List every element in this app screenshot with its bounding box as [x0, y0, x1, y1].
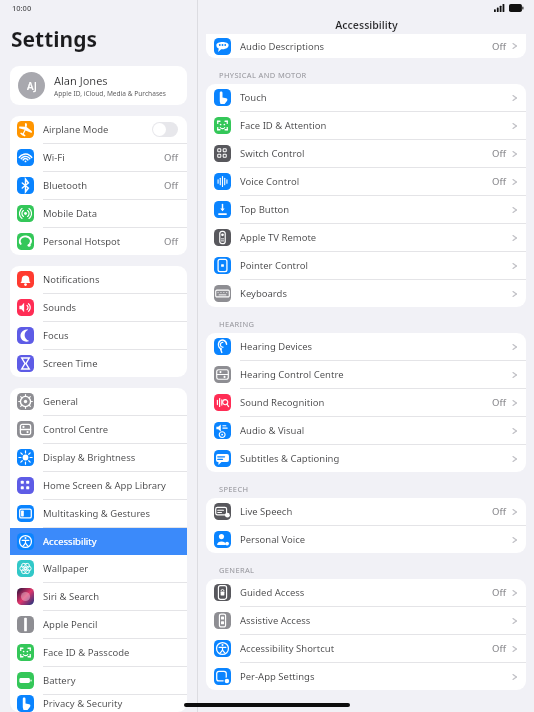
staticText: Bluetooth — [43, 179, 88, 192]
staticText: Live Speech — [240, 505, 293, 518]
staticText: Off — [492, 40, 506, 53]
staticText: Off — [492, 505, 506, 518]
staticText: Accessibility Shortcut — [240, 642, 335, 655]
staticText: Off — [492, 147, 506, 160]
staticText: Guided Access — [240, 586, 305, 599]
staticText: Audio & Visual — [240, 424, 305, 437]
staticText: Hearing Control Centre — [240, 368, 344, 381]
button[interactable]: Assistive Access — [206, 607, 526, 635]
staticText: Accessibility — [335, 18, 398, 32]
staticText: Off — [164, 235, 178, 248]
staticText: Battery — [43, 674, 76, 687]
button[interactable]: Display & Brightness — [10, 444, 187, 472]
button[interactable]: Pointer Control — [206, 252, 526, 280]
button[interactable]: Apple TV Remote — [206, 224, 526, 252]
staticText: Wi-Fi — [43, 151, 65, 164]
button[interactable]: Screen Time — [10, 350, 187, 377]
staticText: Apple Pencil — [43, 618, 98, 631]
button[interactable]: Mobile Data — [10, 200, 187, 228]
button[interactable]: Airplane Mode toggle — [152, 122, 178, 137]
staticText: Audio Descriptions — [240, 40, 325, 53]
staticText: Mobile Data — [43, 207, 97, 220]
staticText: Display & Brightness — [43, 451, 136, 464]
staticText: Airplane Mode — [43, 123, 109, 136]
staticText: Screen Time — [43, 357, 98, 370]
staticText: Siri & Search — [43, 590, 100, 603]
staticText: Notifications — [43, 273, 100, 286]
button[interactable]: Battery — [10, 667, 187, 695]
button[interactable]: Home Screen & App Library — [10, 472, 187, 500]
button[interactable]: Notifications — [10, 266, 187, 294]
button[interactable]: Voice Control — [206, 168, 526, 196]
staticText: Touch — [240, 91, 267, 104]
staticText: Off — [492, 586, 506, 599]
staticText: 10:00 — [12, 3, 32, 13]
button[interactable]: Siri & Search — [10, 583, 187, 611]
button[interactable]: Face ID & Passcode — [10, 639, 187, 667]
button[interactable]: Subtitles & Captioning — [206, 445, 526, 472]
staticText: Apple ID, iCloud, Media & Purchases — [54, 89, 166, 98]
staticText: Off — [164, 151, 178, 164]
button[interactable]: Personal Hotspot — [10, 228, 187, 255]
staticText: General — [43, 395, 79, 408]
button[interactable]: Focus — [10, 322, 187, 350]
staticText: PHYSICAL AND MOTOR — [219, 70, 307, 80]
button[interactable]: Audio & Visual — [206, 417, 526, 445]
button[interactable]: AJ — [10, 66, 187, 105]
button[interactable]: Multitasking & Gestures — [10, 500, 187, 528]
staticText: Control Centre — [43, 423, 109, 436]
staticText: Keyboards — [240, 287, 287, 300]
button[interactable]: Live Speech — [206, 498, 526, 526]
staticText: Sounds — [43, 301, 77, 314]
button[interactable]: Touch — [206, 84, 526, 112]
staticText: Accessibility — [43, 535, 97, 548]
staticText: Pointer Control — [240, 259, 308, 272]
staticText: Hearing Devices — [240, 340, 313, 353]
staticText: Off — [492, 396, 506, 409]
staticText: Off — [492, 175, 506, 188]
button[interactable]: Audio Descriptions — [206, 34, 526, 58]
button[interactable]: Top Button — [206, 196, 526, 224]
staticText: Per-App Settings — [240, 670, 315, 683]
button[interactable]: Hearing Control Centre — [206, 361, 526, 389]
button[interactable]: General — [10, 388, 187, 416]
button[interactable]: Control Centre — [10, 416, 187, 444]
button[interactable]: Wi-Fi — [10, 144, 187, 172]
button[interactable]: Bluetooth — [10, 172, 187, 200]
staticText: Multitasking & Gestures — [43, 507, 151, 520]
staticText: Top Button — [240, 203, 290, 216]
staticText: Settings — [11, 25, 98, 54]
staticText: Voice Control — [240, 175, 300, 188]
button[interactable]: Hearing Devices — [206, 333, 526, 361]
button[interactable]: Per-App Settings — [206, 663, 526, 690]
button[interactable]: Sound Recognition — [206, 389, 526, 417]
button[interactable]: Face ID & Attention — [206, 112, 526, 140]
button[interactable]: Accessibility — [10, 528, 187, 555]
staticText: Wallpaper — [43, 562, 89, 575]
staticText: Personal Hotspot — [43, 235, 121, 248]
staticText: Off — [164, 179, 178, 192]
staticText: HEARING — [219, 319, 255, 329]
button[interactable]: Accessibility Shortcut — [206, 635, 526, 663]
staticText: Home Screen & App Library — [43, 479, 166, 492]
button[interactable]: Wallpaper — [10, 555, 187, 583]
staticText: Focus — [43, 329, 69, 342]
button[interactable]: Switch Control — [206, 140, 526, 168]
button[interactable]: Privacy & Security — [10, 695, 187, 712]
staticText: Face ID & Attention — [240, 119, 327, 132]
button[interactable]: Sounds — [10, 294, 187, 322]
staticText: Personal Voice — [240, 533, 306, 546]
button[interactable]: Keyboards — [206, 280, 526, 307]
button[interactable]: Apple Pencil — [10, 611, 187, 639]
staticText: GENERAL — [219, 565, 255, 575]
staticText: AJ — [27, 79, 37, 93]
button[interactable]: Guided Access — [206, 579, 526, 607]
staticText: Assistive Access — [240, 614, 311, 627]
button[interactable]: Airplane Mode — [10, 116, 187, 144]
button[interactable]: Personal Voice — [206, 526, 526, 553]
staticText: Face ID & Passcode — [43, 646, 130, 659]
staticText: Sound Recognition — [240, 396, 325, 409]
staticText: Alan Jones — [54, 73, 108, 88]
staticText: Apple TV Remote — [240, 231, 317, 244]
staticText: Subtitles & Captioning — [240, 452, 340, 465]
